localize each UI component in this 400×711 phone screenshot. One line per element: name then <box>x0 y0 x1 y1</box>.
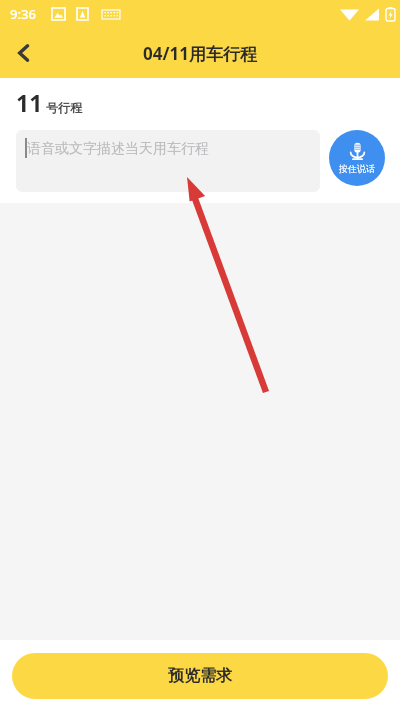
button[interactable]: 预览需求 <box>12 653 388 699</box>
staticText: 9:36 <box>10 5 36 23</box>
button[interactable]: 语音或文字描述当天用车行程 <box>16 130 320 192</box>
staticText: 04/11用车行程 <box>143 42 257 65</box>
staticText: 11 <box>16 87 43 118</box>
button[interactable]: 按住说话 <box>329 130 385 186</box>
button[interactable]: 返回 <box>2 31 46 75</box>
staticText: 语音或文字描述当天用车行程 <box>27 140 209 158</box>
staticText: 号行程 <box>46 100 82 115</box>
staticText: 预览需求 <box>168 666 232 686</box>
staticText: 按住说话 <box>339 163 375 174</box>
